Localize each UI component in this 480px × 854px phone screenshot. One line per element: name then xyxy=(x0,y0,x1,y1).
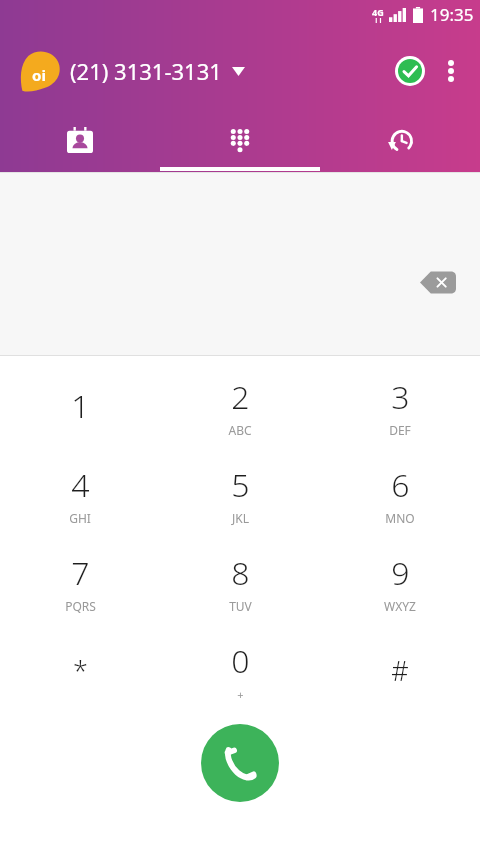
staticText: 4G xyxy=(372,6,384,18)
button[interactable]: 2 xyxy=(160,368,320,456)
staticText: WXYZ xyxy=(384,598,416,614)
staticText: TUV xyxy=(229,598,252,614)
button[interactable]: More options xyxy=(432,52,470,90)
button[interactable]: Confirm xyxy=(388,49,432,93)
staticText: oi xyxy=(32,65,46,85)
staticText: + xyxy=(237,687,244,702)
staticText: 5 xyxy=(231,463,250,507)
button[interactable]: 3 xyxy=(320,368,480,456)
staticText: PQRS xyxy=(65,598,96,614)
button[interactable]: 4 xyxy=(0,456,160,544)
staticText: 6 xyxy=(391,463,410,507)
staticText: 4 xyxy=(71,463,90,507)
staticText: 2 xyxy=(231,375,250,419)
button[interactable]: 7 xyxy=(0,544,160,632)
staticText: * xyxy=(73,652,88,689)
staticText: 9 xyxy=(391,551,410,595)
button[interactable]: 0 xyxy=(160,632,320,720)
button[interactable]: Call xyxy=(201,724,279,802)
button[interactable]: Call history xyxy=(320,114,480,172)
staticText: 3 xyxy=(391,375,410,419)
button[interactable]: Dialpad xyxy=(160,114,320,172)
staticText: DEF xyxy=(389,422,411,438)
staticText: JKL xyxy=(232,510,249,526)
staticText: 7 xyxy=(71,551,90,595)
button[interactable]: Oi carrier xyxy=(18,49,62,93)
button[interactable]: (21) 3131-3131 xyxy=(70,56,245,86)
staticText: 1 xyxy=(71,384,90,428)
button[interactable]: 5 xyxy=(160,456,320,544)
button[interactable]: Backspace xyxy=(414,258,462,306)
button[interactable]: 9 xyxy=(320,544,480,632)
staticText: 8 xyxy=(231,551,250,595)
button[interactable]: * xyxy=(0,632,160,720)
staticText: GHI xyxy=(69,510,91,526)
staticText: # xyxy=(391,652,409,689)
staticText: MNO xyxy=(385,510,415,526)
staticText: ABC xyxy=(228,422,252,438)
button[interactable]: 8 xyxy=(160,544,320,632)
staticText: (21) 3131-3131 xyxy=(70,56,222,86)
button[interactable]: 1 xyxy=(0,368,160,456)
staticText: 0 xyxy=(231,639,250,683)
button[interactable]: # xyxy=(320,632,480,720)
staticText: 19:35 xyxy=(430,3,474,26)
button[interactable]: Contacts xyxy=(0,114,160,172)
button[interactable]: 6 xyxy=(320,456,480,544)
